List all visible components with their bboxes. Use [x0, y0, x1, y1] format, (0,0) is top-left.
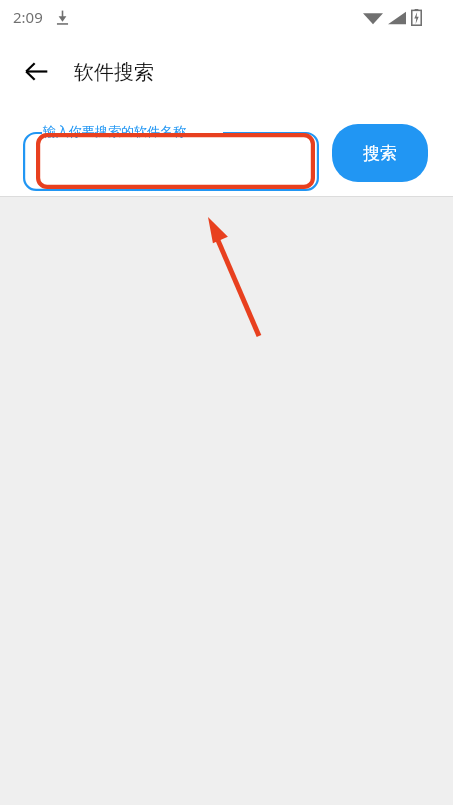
button[interactable]: Back: [14, 49, 58, 93]
staticText: 软件搜索: [74, 60, 154, 85]
staticText: 搜索: [363, 143, 397, 164]
button[interactable]: 输入你要搜索的软件名称: [23, 122, 319, 191]
button[interactable]: 搜索: [332, 124, 428, 182]
staticText: 2:09: [13, 7, 43, 27]
staticText: 输入你要搜索的软件名称: [43, 123, 186, 139]
